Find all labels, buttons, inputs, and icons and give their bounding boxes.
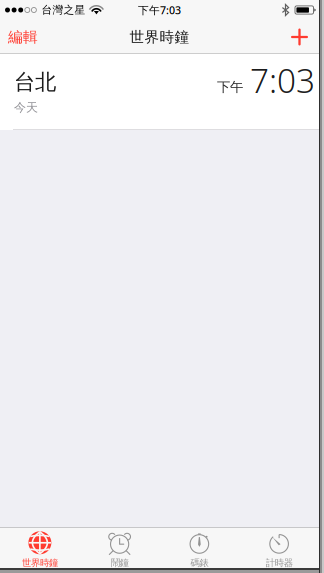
button[interactable]: 台北 (0, 54, 319, 130)
staticText: 下午7:03 (138, 3, 181, 17)
button[interactable]: 新增城市 (280, 20, 319, 54)
button[interactable]: 計時器 (239, 527, 319, 568)
staticText: 台灣之星 (41, 3, 85, 16)
staticText: 計時器 (266, 557, 293, 569)
staticText: 碼錶 (190, 557, 208, 569)
staticText: 編輯 (8, 28, 38, 46)
button[interactable]: 編輯 (0, 20, 46, 54)
staticText: 台北 (14, 69, 56, 95)
staticText: 今天 (14, 100, 38, 115)
staticText: 世界時鐘 (129, 28, 189, 46)
staticText: 7:03 (250, 58, 315, 102)
staticText: 下午 (217, 79, 243, 95)
button[interactable]: 碼錶 (159, 527, 239, 568)
button[interactable]: 世界時鐘 (0, 527, 80, 568)
staticText: 世界時鐘 (22, 557, 58, 569)
staticText: 鬧鐘 (111, 557, 129, 569)
button[interactable]: 鬧鐘 (80, 527, 160, 568)
